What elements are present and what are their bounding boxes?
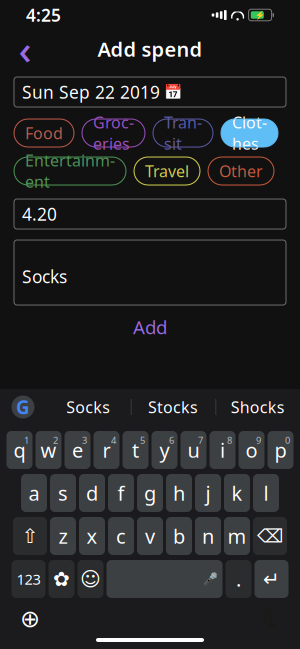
staticText: d <box>86 480 98 506</box>
button[interactable]: d <box>79 474 105 512</box>
staticText: Add <box>133 315 167 339</box>
button[interactable]: ⇧ <box>13 517 47 555</box>
staticText: y <box>159 437 169 463</box>
button[interactable]: p <box>267 431 293 469</box>
staticText: ✿ <box>53 568 70 590</box>
staticText: ↵ <box>263 568 280 590</box>
staticText: Socks <box>66 396 110 418</box>
button[interactable]: Entertainment <box>14 157 126 185</box>
button[interactable]: . <box>225 560 251 598</box>
staticText: f <box>117 480 124 506</box>
staticText: ⇧ <box>21 525 38 547</box>
staticText: 4.20 <box>22 202 57 225</box>
button[interactable]: h <box>166 474 192 512</box>
button[interactable]: c <box>108 517 134 555</box>
staticText: ⊕ <box>20 605 40 633</box>
button[interactable]: z <box>50 517 76 555</box>
staticText: Socks <box>22 265 67 288</box>
button[interactable]: m <box>224 517 250 555</box>
button[interactable]: Shocks <box>215 391 300 423</box>
button[interactable]: e <box>64 431 90 469</box>
button[interactable]: Food <box>14 119 74 147</box>
button[interactable]: s <box>50 474 76 512</box>
staticText: Stocks <box>148 396 198 418</box>
staticText: 6 <box>169 434 174 446</box>
staticText: 9 <box>256 434 261 446</box>
staticText: ‹ <box>18 22 31 75</box>
button[interactable]: Space <box>106 560 222 598</box>
button[interactable]: Change keyboard language <box>8 602 52 636</box>
staticText: a <box>28 480 39 506</box>
button[interactable]: Groceries <box>82 119 145 147</box>
staticText: c <box>116 523 126 549</box>
staticText: r <box>102 437 110 463</box>
staticText: 8 <box>227 434 232 446</box>
staticText: Sun Sep 22 2019 <box>22 80 160 103</box>
staticText: Groceries <box>93 112 134 154</box>
button[interactable]: t <box>122 431 148 469</box>
button[interactable]: Add <box>14 313 286 341</box>
button[interactable]: Back <box>8 32 42 66</box>
button[interactable]: j <box>195 474 221 512</box>
staticText: v <box>145 523 155 549</box>
button[interactable]: b <box>166 517 192 555</box>
button[interactable]: ☺ <box>77 560 103 598</box>
staticText: n <box>202 523 214 549</box>
staticText: 4:25 <box>26 3 61 26</box>
button[interactable]: Clothes <box>221 119 278 147</box>
staticText: Food <box>25 122 63 144</box>
button[interactable]: 123 <box>11 560 45 598</box>
button[interactable]: f <box>108 474 134 512</box>
button[interactable]: Transit <box>153 119 213 147</box>
staticText: 7 <box>198 434 203 446</box>
button[interactable]: Socks <box>46 391 131 423</box>
staticText: g <box>144 480 156 506</box>
button[interactable]: Stocks <box>131 391 215 423</box>
staticText: ⌫ <box>257 525 283 547</box>
button[interactable]: Other <box>208 157 274 185</box>
staticText: x <box>86 523 97 549</box>
button[interactable]: l <box>253 474 279 512</box>
staticText: b <box>173 523 185 549</box>
staticText: k <box>231 480 242 506</box>
button[interactable]: v <box>137 517 163 555</box>
staticText: G <box>16 395 30 419</box>
staticText: Add spend <box>97 36 202 62</box>
staticText: l <box>263 480 268 506</box>
staticText: u <box>187 437 199 463</box>
staticText: t <box>132 437 139 463</box>
staticText: 🎤 <box>202 572 217 586</box>
button[interactable]: ⌫ <box>253 517 287 555</box>
button[interactable]: ✿ <box>48 560 74 598</box>
button[interactable]: q <box>6 431 32 469</box>
button[interactable]: r <box>93 431 119 469</box>
staticText: 2 <box>53 434 58 446</box>
staticText: . <box>236 566 241 592</box>
staticText: p <box>274 437 286 463</box>
button[interactable]: a <box>21 474 47 512</box>
button[interactable]: x <box>79 517 105 555</box>
button[interactable]: n <box>195 517 221 555</box>
staticText: 0 <box>285 434 290 446</box>
button[interactable]: u <box>180 431 206 469</box>
button[interactable]: o <box>238 431 264 469</box>
staticText: 📅 <box>164 84 182 100</box>
button[interactable]: y <box>151 431 177 469</box>
staticText: Travel <box>145 160 189 182</box>
button[interactable]: k <box>224 474 250 512</box>
staticText: z <box>58 523 67 549</box>
staticText: h <box>173 480 185 506</box>
button[interactable]: g <box>137 474 163 512</box>
button[interactable]: ↵ <box>254 560 288 598</box>
button[interactable]: Google search <box>0 391 46 423</box>
staticText: q <box>13 437 25 463</box>
staticText: Clothes <box>232 112 267 154</box>
staticText: Transit <box>164 112 202 154</box>
staticText: ☺ <box>80 568 101 590</box>
button[interactable]: Travel <box>134 157 200 185</box>
staticText: j <box>205 480 210 506</box>
button[interactable]: i <box>209 431 235 469</box>
button[interactable]: w <box>35 431 61 469</box>
